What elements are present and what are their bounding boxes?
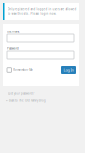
staticText: Only registered and logged in users are … <box>7 7 76 11</box>
staticText: Log In <box>63 67 73 73</box>
staticText: Lost your password? <box>8 92 34 95</box>
button[interactable]: Lost your password? <box>8 91 34 96</box>
button[interactable]: ← Back to The Old Family Blog <box>6 98 46 103</box>
button[interactable]: Remember Me <box>7 66 33 74</box>
staticText: ← Back to The Old Family Blog <box>6 99 46 102</box>
staticText: Username <box>7 30 20 33</box>
staticText: Remember Me <box>13 68 33 72</box>
button[interactable]: Log In <box>61 66 76 74</box>
staticText: to view this site. Please login now. <box>7 12 56 15</box>
staticText: Password <box>7 47 19 50</box>
